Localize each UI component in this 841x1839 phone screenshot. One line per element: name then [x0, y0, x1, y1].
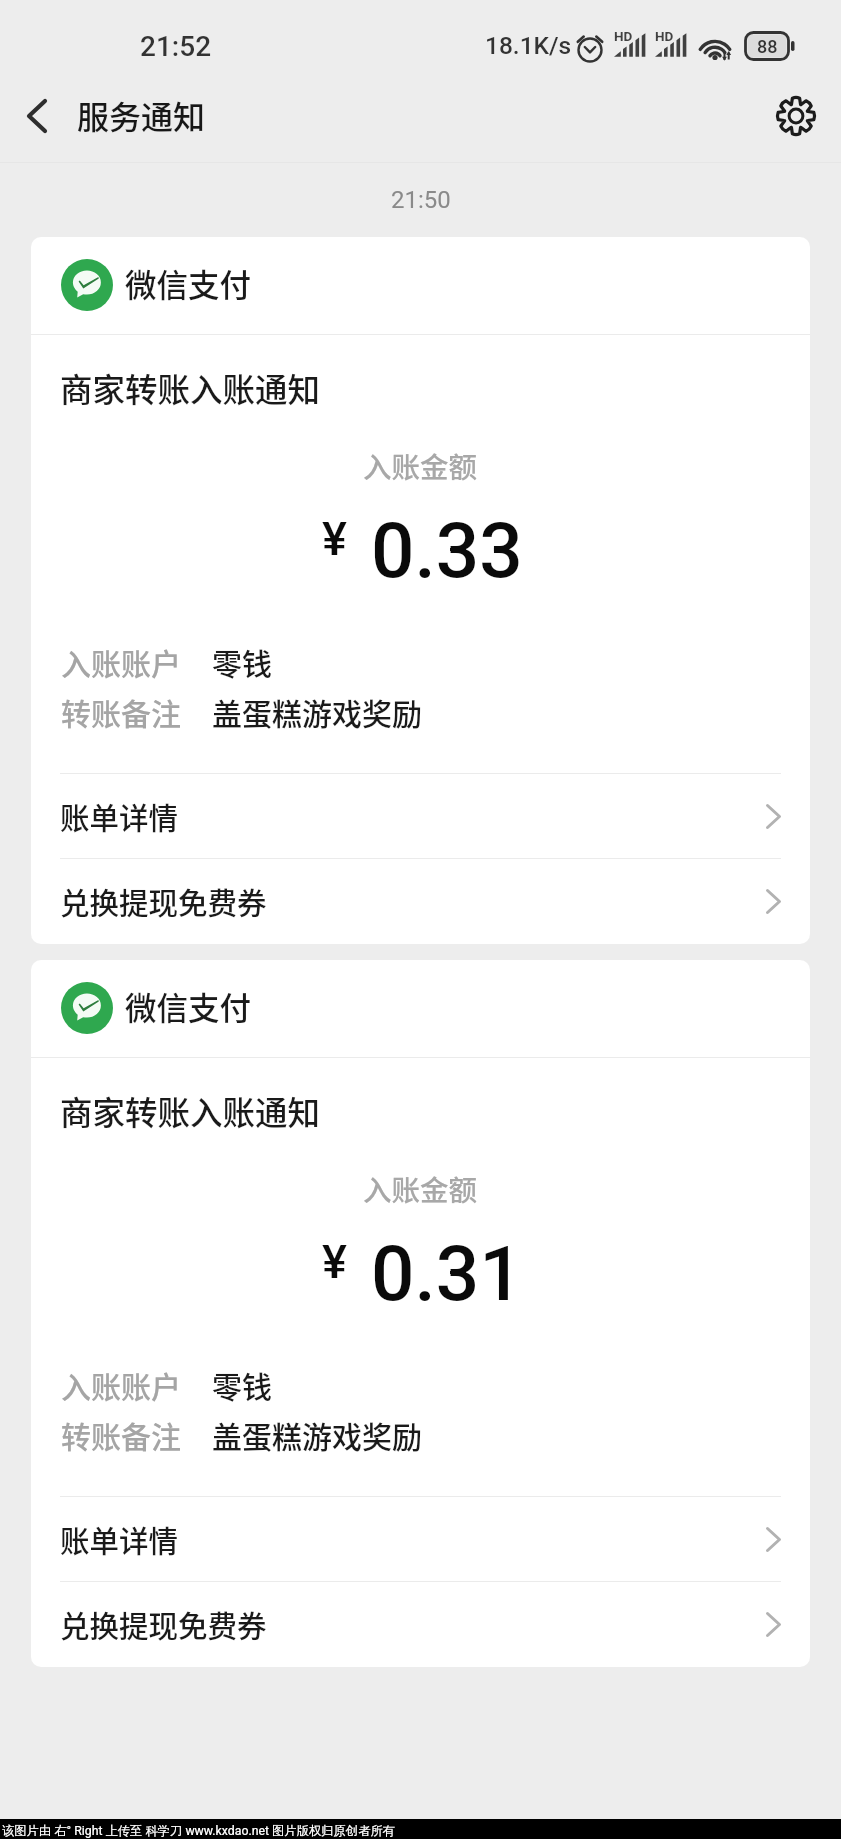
staticText: HD — [614, 28, 633, 44]
staticText: 账单详情 — [60, 1518, 179, 1561]
button[interactable]: Settings — [764, 84, 828, 148]
staticText: 零钱 — [212, 1363, 272, 1406]
staticText: 商家转账入账通知 — [60, 364, 321, 411]
staticText: 21:52 — [140, 30, 212, 63]
button[interactable]: 账单详情 — [60, 1497, 781, 1582]
staticText: 入账账户 — [61, 1363, 181, 1406]
button[interactable]: 兑换提现免费券 — [60, 1582, 781, 1667]
button[interactable]: 账单详情 — [60, 774, 781, 859]
staticText: ¥ — [322, 1234, 347, 1289]
staticText: 21:50 — [391, 186, 451, 214]
staticText: 兑换提现免费券 — [60, 1603, 267, 1646]
staticText: ¥ — [322, 511, 347, 566]
staticText: 18.1K/s — [485, 31, 572, 60]
button[interactable]: 微信支付 — [31, 237, 810, 944]
staticText: 88 — [757, 36, 778, 57]
staticText: 0.33 — [371, 506, 523, 596]
staticText: 商家转账入账通知 — [60, 1087, 321, 1134]
staticText: 兑换提现免费券 — [60, 880, 267, 923]
staticText: 入账账户 — [61, 640, 181, 683]
button[interactable]: 兑换提现免费券 — [60, 859, 781, 944]
staticText: 转账备注 — [61, 690, 181, 733]
staticText: 盖蛋糕游戏奖励 — [212, 1413, 422, 1456]
staticText: 账单详情 — [60, 795, 179, 838]
staticText: 转账备注 — [61, 1413, 181, 1456]
staticText: 服务通知 — [77, 92, 206, 138]
staticText: 0.31 — [371, 1229, 523, 1319]
staticText: HD — [655, 28, 674, 44]
staticText: 该图片由 右° Right 上传至 科学刀 www.kxdao.net 图片版权… — [2, 1823, 396, 1838]
staticText: 微信支付 — [125, 983, 252, 1029]
staticText: 零钱 — [212, 640, 272, 683]
staticText: 入账金额 — [363, 445, 478, 486]
button[interactable]: Back — [5, 84, 69, 148]
staticText: 微信支付 — [125, 260, 252, 306]
staticText: 盖蛋糕游戏奖励 — [212, 690, 422, 733]
staticText: 入账金额 — [363, 1168, 478, 1209]
button[interactable]: 微信支付 — [31, 960, 810, 1667]
